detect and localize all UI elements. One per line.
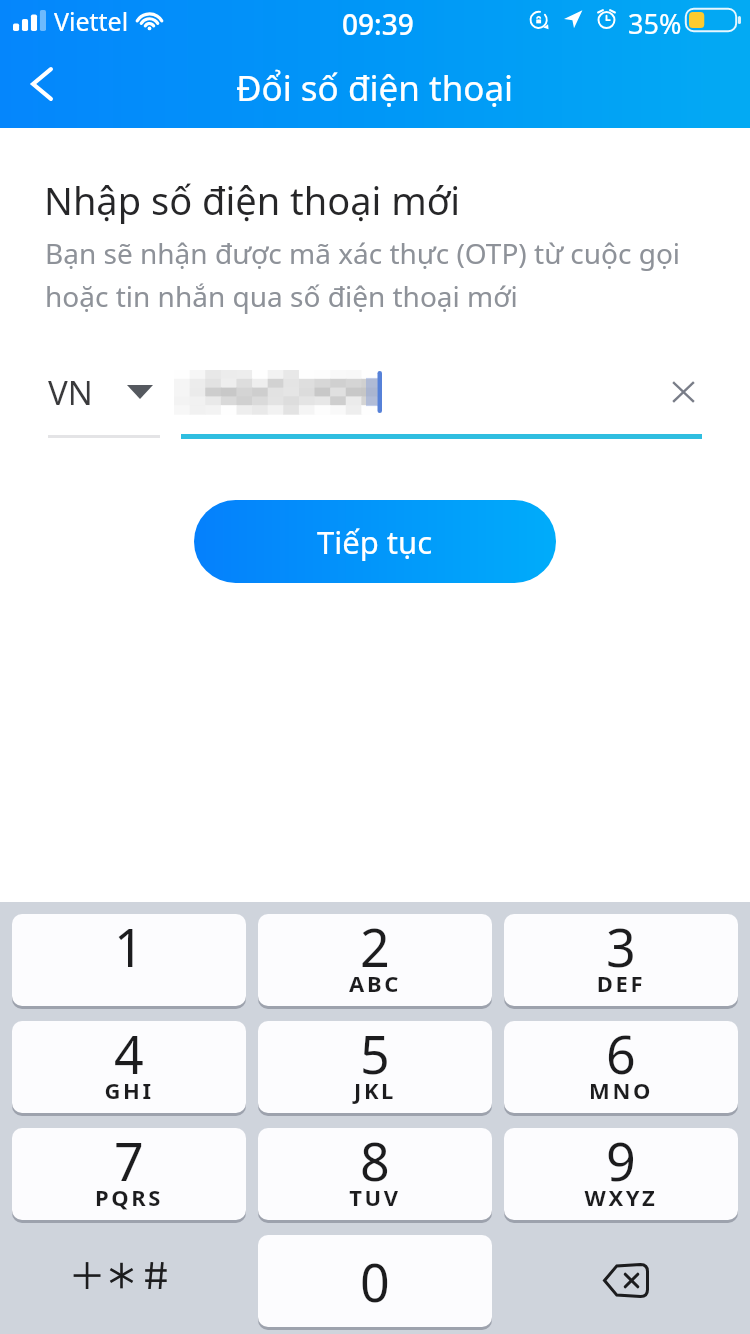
staticText: ABC <box>258 968 492 998</box>
button[interactable]: 1 <box>12 914 246 1006</box>
button[interactable]: 5 <box>258 1021 492 1113</box>
staticText: 4 <box>114 1021 144 1080</box>
staticText: WXYZ <box>504 1182 738 1212</box>
button[interactable]: Back <box>12 54 72 114</box>
staticText: VN <box>48 370 93 415</box>
button[interactable]: Phone number <box>181 366 655 418</box>
button[interactable]: 6 <box>504 1021 738 1113</box>
staticText: 3 <box>606 914 636 973</box>
button[interactable]: 9 <box>504 1128 738 1220</box>
staticText: 9 <box>606 1128 636 1187</box>
staticText: MNO <box>504 1075 738 1105</box>
staticText: 7 <box>114 1128 144 1187</box>
staticText: 8 <box>360 1128 390 1187</box>
staticText: 6 <box>606 1021 636 1080</box>
button[interactable]: 2 <box>258 914 492 1006</box>
staticText: Tiếp tục <box>317 521 433 563</box>
staticText: 0 <box>360 1246 390 1317</box>
staticText: 1 <box>114 914 144 973</box>
staticText: 09:39 <box>342 5 414 43</box>
staticText: 5 <box>360 1021 390 1080</box>
staticText: Nhập số điện thoại mới <box>44 174 460 226</box>
button[interactable]: 8 <box>258 1128 492 1220</box>
button[interactable]: Symbols <box>12 1235 246 1327</box>
staticText: JKL <box>258 1075 492 1105</box>
staticText: GHI <box>12 1075 246 1105</box>
staticText: 2 <box>360 914 390 973</box>
staticText: Đổi số điện thoại <box>236 64 514 112</box>
staticText: DEF <box>504 968 738 998</box>
staticText: Bạn sẽ nhận được mã xác thực (OTP) từ cu… <box>45 234 681 315</box>
button[interactable]: Backspace <box>504 1235 738 1327</box>
staticText: Viettel <box>54 4 129 38</box>
button[interactable]: Country code VN <box>48 366 160 418</box>
staticText: TUV <box>258 1182 492 1212</box>
button[interactable]: Tiếp tục <box>194 500 556 583</box>
button[interactable]: 7 <box>12 1128 246 1220</box>
button[interactable]: 3 <box>504 914 738 1006</box>
button[interactable]: 4 <box>12 1021 246 1113</box>
button[interactable]: 0 <box>258 1235 492 1327</box>
staticText: PQRS <box>12 1182 246 1212</box>
button[interactable]: Clear <box>655 364 711 420</box>
staticText: 35% <box>628 5 682 42</box>
